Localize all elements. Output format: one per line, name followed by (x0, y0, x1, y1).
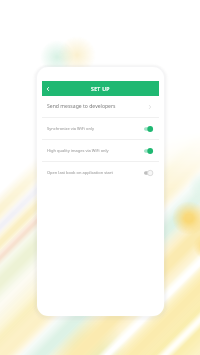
staticText: Open last book on application start (47, 170, 142, 175)
button[interactable]: Synchronize via WiFi only (42, 118, 159, 139)
button[interactable]: Send message to developers (42, 96, 159, 117)
other: Open (146, 102, 154, 112)
button[interactable]: Back (42, 83, 54, 95)
staticText: Send message to developers (47, 103, 146, 110)
staticText: Synchronize via WiFi only (47, 126, 142, 131)
button[interactable]: High quality images via WiFi only (42, 140, 159, 161)
button[interactable]: Open last book on application start (42, 162, 159, 183)
staticText: High quality images via WiFi only (47, 148, 142, 153)
staticText: SET UP (91, 85, 110, 92)
